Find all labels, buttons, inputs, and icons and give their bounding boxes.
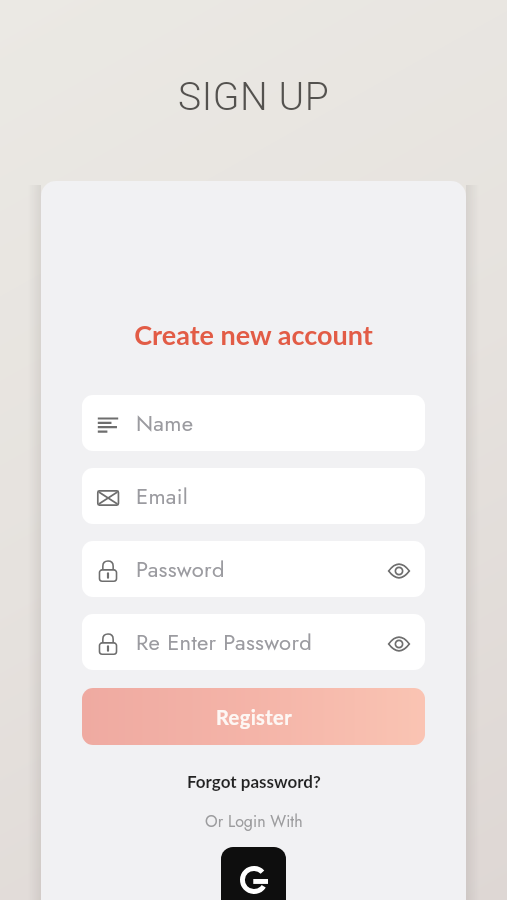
staticText: Email xyxy=(136,480,189,512)
staticText: SIGN UP xyxy=(178,74,330,120)
button[interactable]: Re Enter Password xyxy=(82,614,425,670)
staticText: Register xyxy=(216,705,292,729)
button[interactable]: Toggle password visibility xyxy=(379,622,419,662)
staticText: Create new account xyxy=(134,318,373,350)
button[interactable]: Name xyxy=(82,395,425,451)
button[interactable]: Login with Google xyxy=(221,847,286,900)
button[interactable]: Register xyxy=(82,688,425,745)
staticText: Name xyxy=(136,407,194,439)
staticText: Or Login With xyxy=(205,810,303,833)
button[interactable]: Password xyxy=(82,541,425,597)
staticText: Re Enter Password xyxy=(136,626,313,658)
staticText: Password xyxy=(136,553,225,585)
button[interactable]: Toggle password visibility xyxy=(379,549,419,589)
button[interactable]: Forgot password? xyxy=(187,771,321,791)
button[interactable]: Email xyxy=(82,468,425,524)
